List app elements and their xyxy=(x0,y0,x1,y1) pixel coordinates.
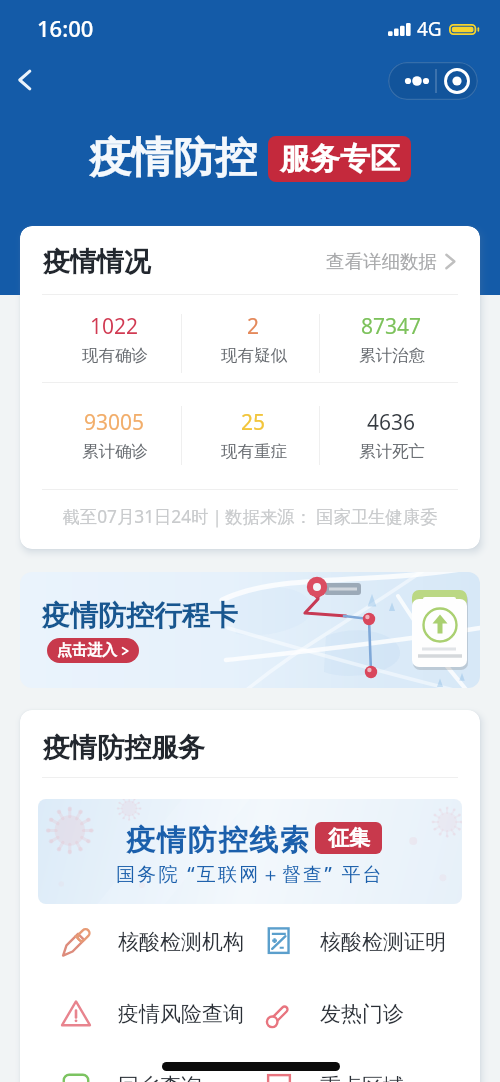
staticText: 征集 xyxy=(328,825,370,851)
staticText: 累计死亡 xyxy=(359,441,425,462)
button[interactable]: 核酸检测证明 xyxy=(262,906,458,978)
staticText: 2 xyxy=(247,312,260,341)
staticText: 1022 xyxy=(90,312,139,341)
button[interactable]: 重点区域 xyxy=(262,1050,458,1082)
staticText: 疫情防控服务 xyxy=(43,731,205,765)
staticText: 疫情防控线索 xyxy=(126,822,311,854)
staticText: 16:00 xyxy=(37,13,94,43)
staticText: 疫情防控 xyxy=(89,132,257,185)
staticText: 累计治愈 xyxy=(359,345,425,366)
staticText: 回乡查询 xyxy=(118,1073,202,1082)
staticText: 现有重症 xyxy=(221,441,287,462)
staticText: 现有确诊 xyxy=(82,345,148,366)
staticText: 核酸检测机构 xyxy=(118,929,244,955)
staticText: 累计确诊 xyxy=(82,441,148,462)
staticText: 服务专区 xyxy=(280,140,400,178)
staticText: 现有疑似 xyxy=(221,345,287,366)
button[interactable]: Menu options xyxy=(388,62,478,100)
staticText: 核酸检测证明 xyxy=(320,929,446,955)
staticText: 疫情防控行程卡 xyxy=(42,598,238,633)
button[interactable]: 发热门诊 xyxy=(262,978,458,1050)
staticText: 4G xyxy=(417,16,442,42)
staticText: 疫情情况 xyxy=(43,245,151,279)
staticText: 点击进入 xyxy=(57,641,117,660)
staticText: 疫情风险查询 xyxy=(118,1001,244,1027)
button[interactable]: 查看详细数据 xyxy=(326,246,457,276)
button[interactable]: 疫情风险查询 xyxy=(59,978,264,1050)
button[interactable]: 点击进入 xyxy=(57,638,139,663)
staticText: 93005 xyxy=(84,408,145,437)
staticText: 发热门诊 xyxy=(320,1001,404,1027)
staticText: 截至07月31日24时｜数据来源： 国家卫生健康委 xyxy=(20,505,480,529)
staticText: 重点区域 xyxy=(320,1073,404,1082)
staticText: 87347 xyxy=(361,312,422,341)
staticText: 25 xyxy=(241,408,266,437)
staticText: 国务院 “互联网＋督查” 平台 xyxy=(38,861,462,887)
staticText: 查看详细数据 xyxy=(326,250,437,273)
button[interactable]: 疫情防控线索 xyxy=(38,799,462,904)
button[interactable]: 核酸检测机构 xyxy=(59,906,264,978)
staticText: 4636 xyxy=(367,408,416,437)
button[interactable]: 疫情防控行程卡 xyxy=(20,572,480,688)
button[interactable]: Back xyxy=(3,58,47,102)
button[interactable]: 回乡查询 xyxy=(59,1050,264,1082)
